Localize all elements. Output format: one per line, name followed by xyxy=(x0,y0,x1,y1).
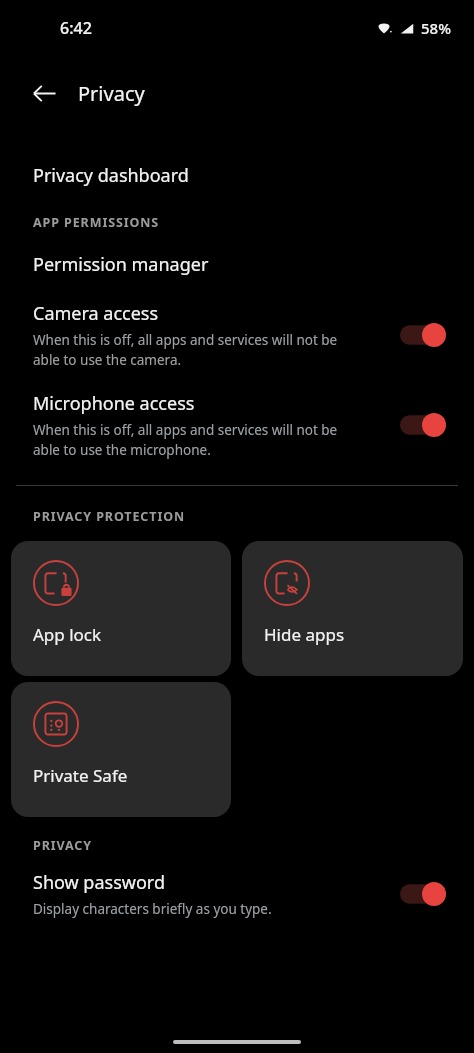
button[interactable]: Privacy dashboard xyxy=(0,160,474,190)
staticText: Permission manager xyxy=(33,252,209,277)
staticText: When this is off, all apps and services … xyxy=(33,331,338,369)
staticText: Display characters briefly as you type. xyxy=(33,900,272,918)
staticText: Privacy xyxy=(78,80,145,107)
staticText: App lock xyxy=(33,623,102,646)
staticText: PRIVACY PROTECTION xyxy=(33,508,474,525)
staticText: PRIVACY xyxy=(33,837,474,854)
staticText: 6:42 xyxy=(60,17,92,39)
staticText: Show password xyxy=(33,870,165,895)
button[interactable]: Camera access xyxy=(0,301,474,369)
staticText: Privacy dashboard xyxy=(33,163,189,188)
button[interactable]: Hide apps xyxy=(242,541,463,676)
staticText: When this is off, all apps and services … xyxy=(33,421,338,459)
staticText: Private Safe xyxy=(33,764,128,787)
staticText: Microphone access xyxy=(33,391,195,416)
button[interactable]: Permission manager xyxy=(0,249,474,279)
staticText: 58% xyxy=(421,18,451,38)
staticText: Camera access xyxy=(33,301,159,326)
button[interactable]: Private Safe xyxy=(11,682,231,817)
button[interactable]: Microphone access xyxy=(0,391,474,459)
button[interactable]: App lock xyxy=(11,541,231,676)
staticText: Hide apps xyxy=(264,623,345,646)
staticText: APP PERMISSIONS xyxy=(33,214,474,231)
button[interactable]: Back xyxy=(22,71,66,115)
button[interactable]: Show password xyxy=(0,870,474,918)
